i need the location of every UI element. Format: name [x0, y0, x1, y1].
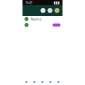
staticText: 9:41 — [25, 0, 32, 5]
staticText: Name — [30, 16, 41, 22]
staticText: ▮▮▮ — [53, 0, 59, 5]
